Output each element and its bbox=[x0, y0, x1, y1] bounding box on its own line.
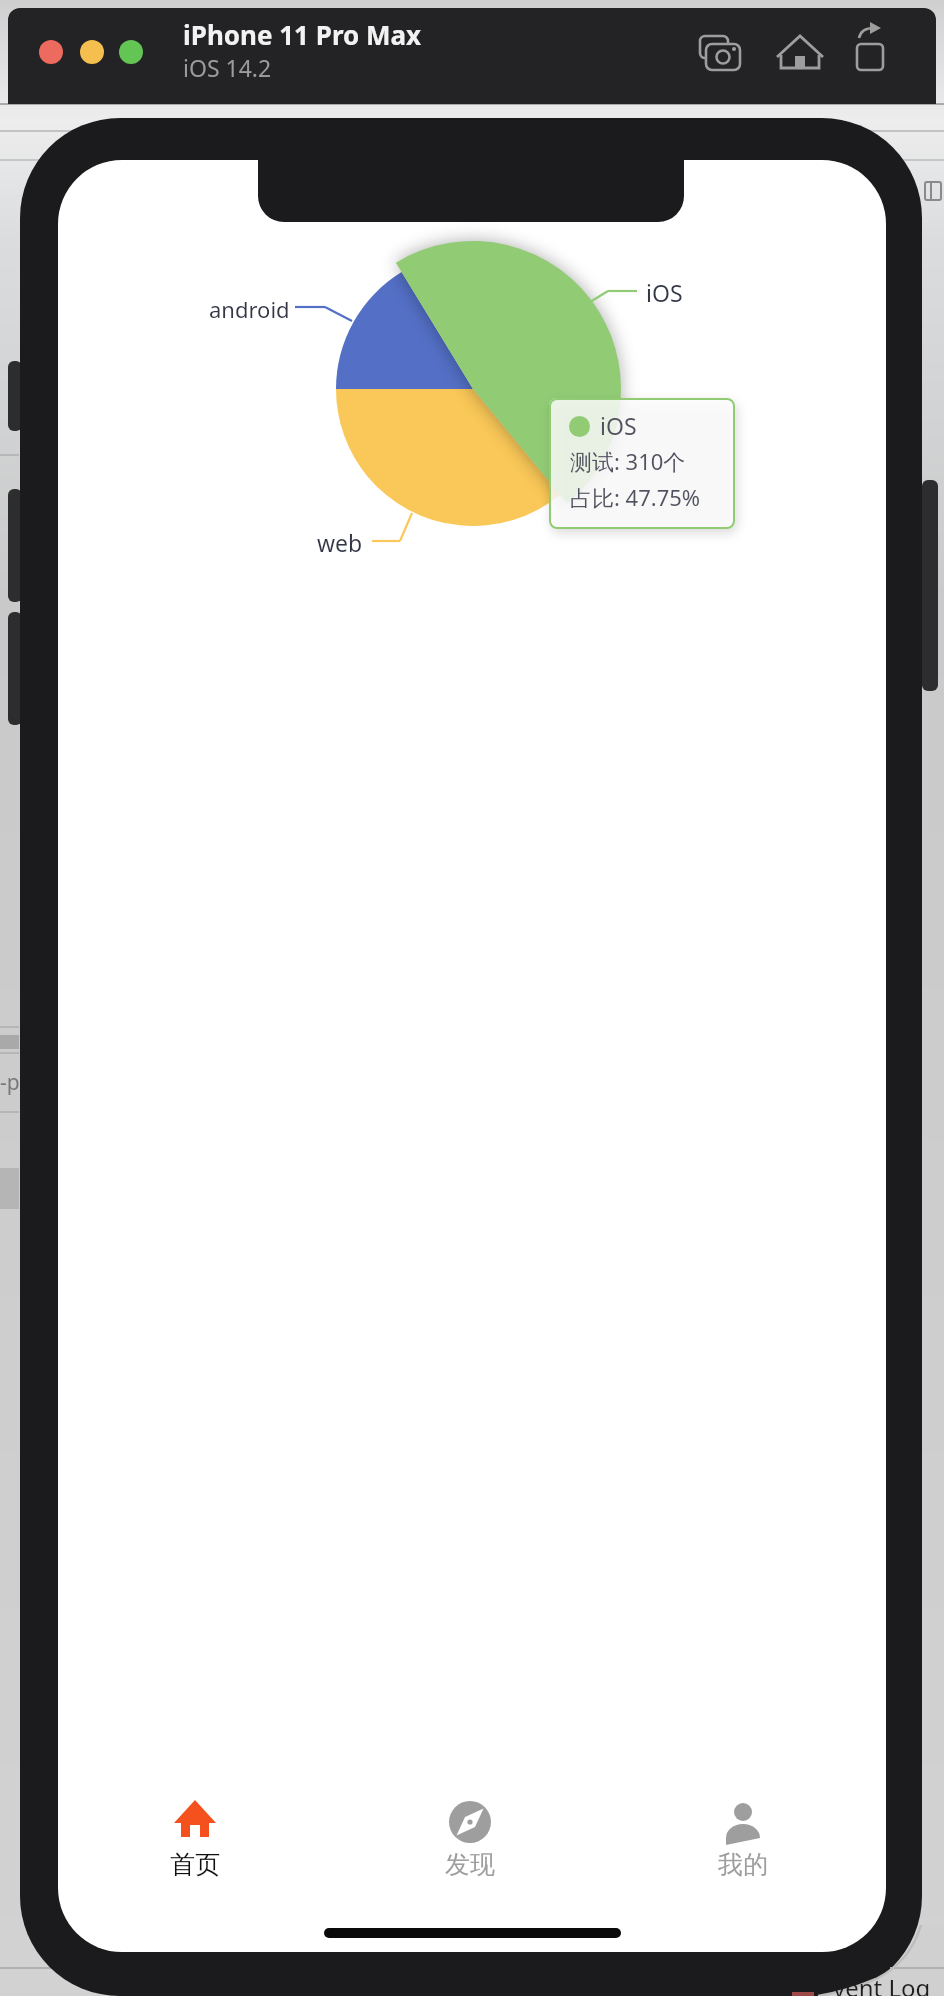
button[interactable]: 首页 bbox=[135, 1793, 255, 1885]
staticText: iOS bbox=[600, 410, 637, 441]
staticText: iOS 14.2 bbox=[183, 52, 272, 83]
button[interactable] bbox=[80, 40, 104, 64]
button[interactable] bbox=[39, 40, 63, 64]
staticText: android bbox=[209, 294, 290, 324]
staticText: 我的 bbox=[718, 1849, 768, 1880]
staticText: -p bbox=[0, 1068, 20, 1097]
button[interactable]: 我的 bbox=[683, 1793, 803, 1885]
staticText: iPhone 11 Pro Max bbox=[183, 17, 422, 52]
staticText: 测试: 310个 bbox=[570, 446, 686, 476]
staticText: web bbox=[317, 527, 363, 558]
staticText: 占比: 47.75% bbox=[570, 482, 701, 512]
staticText: vent Log bbox=[833, 1971, 931, 1996]
button[interactable]: 发现 bbox=[410, 1793, 530, 1885]
staticText: iOS bbox=[646, 277, 683, 308]
staticText: 首页 bbox=[170, 1849, 220, 1880]
button[interactable] bbox=[119, 40, 143, 64]
staticText: 发现 bbox=[445, 1849, 495, 1880]
